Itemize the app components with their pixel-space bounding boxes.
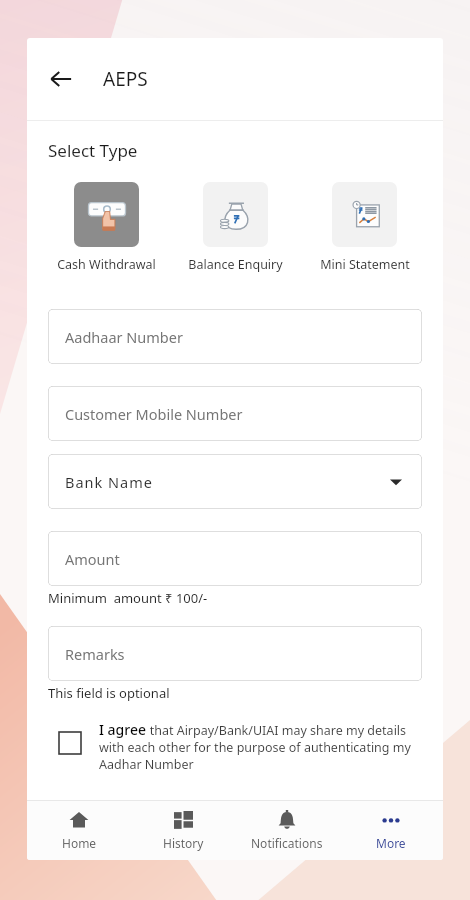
staticText: Bank Name: [65, 472, 153, 492]
staticText: Amount: [65, 549, 120, 569]
button[interactable]: More: [339, 810, 443, 851]
staticText: Notifications: [251, 835, 323, 851]
button[interactable]: Cash Withdrawal: [41, 182, 171, 273]
button[interactable]: Home: [27, 810, 131, 851]
button[interactable]: Balance Enquiry: [171, 182, 300, 273]
staticText: Aadhaar Number: [65, 327, 183, 347]
button[interactable]: History: [131, 811, 235, 851]
button[interactable]: Back: [39, 57, 83, 101]
button[interactable]: Notifications: [235, 810, 339, 851]
staticText: More: [376, 835, 406, 851]
staticText: This field is optional: [48, 684, 170, 702]
staticText: Customer Mobile Number: [65, 404, 243, 424]
staticText: Remarks: [65, 644, 125, 664]
button[interactable]: I agree that Airpay/Bank/UIAI may share …: [59, 720, 419, 773]
staticText: AEPS: [103, 66, 148, 92]
staticText: Balance Enquiry: [188, 256, 283, 273]
button[interactable]: Aadhaar Number: [48, 309, 422, 364]
staticText: Cash Withdrawal: [57, 256, 156, 273]
staticText: Home: [62, 835, 97, 851]
button[interactable]: Mini Statement: [300, 182, 429, 273]
staticText: Minimum amount ₹ 100/-: [48, 589, 208, 607]
staticText: Select Type: [48, 139, 138, 162]
button[interactable]: Remarks: [48, 626, 422, 681]
button[interactable]: Bank Name: [48, 454, 422, 509]
staticText: I agree that Airpay/Bank/UIAI may share …: [99, 720, 419, 773]
staticText: History: [163, 835, 204, 851]
staticText: Mini Statement: [320, 256, 410, 273]
button[interactable]: Amount: [48, 531, 422, 586]
button[interactable]: Customer Mobile Number: [48, 386, 422, 441]
